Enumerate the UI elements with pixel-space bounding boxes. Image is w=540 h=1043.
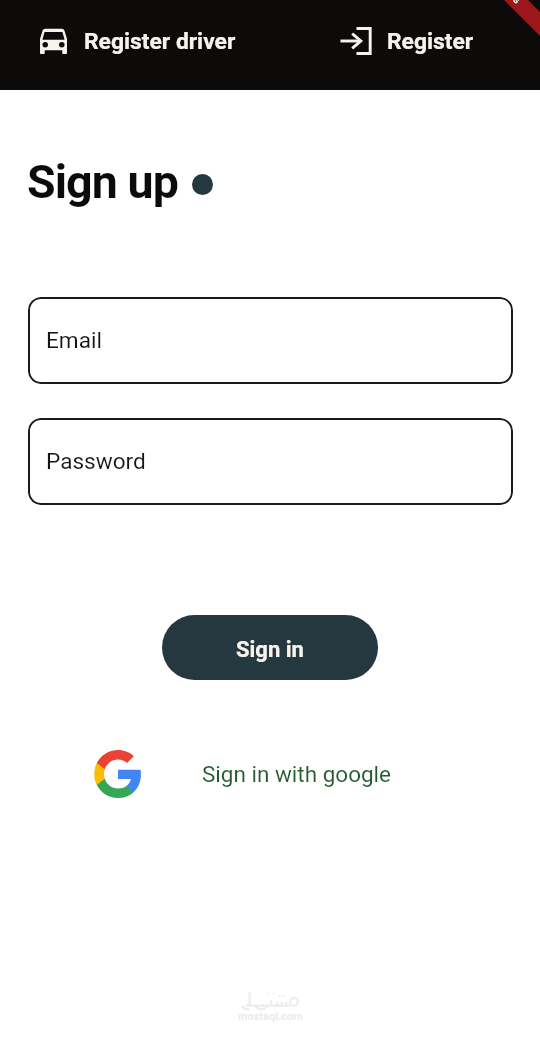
- staticText: Sign in: [236, 637, 304, 663]
- button[interactable]: Sign in: [162, 615, 378, 680]
- button[interactable]: Register driver: [39, 0, 236, 90]
- button[interactable]: Register: [339, 0, 474, 90]
- other: Register: [339, 27, 372, 55]
- staticText: Register driver: [84, 28, 236, 55]
- staticText: Sign up: [27, 155, 179, 209]
- staticText: Register: [387, 28, 474, 55]
- staticText: mostaql.com: [238, 1010, 303, 1023]
- button[interactable]: Password: [28, 418, 513, 505]
- other: Register driver: [39, 28, 68, 54]
- staticText: Sign in with google: [202, 761, 391, 787]
- staticText: Password: [46, 448, 146, 474]
- other: Sign in with google: [93, 749, 143, 799]
- button[interactable]: Email: [28, 297, 513, 384]
- staticText: Email: [46, 327, 102, 353]
- staticText: DEBUG: [497, 0, 521, 6]
- button[interactable]: Sign in with google: [0, 749, 540, 799]
